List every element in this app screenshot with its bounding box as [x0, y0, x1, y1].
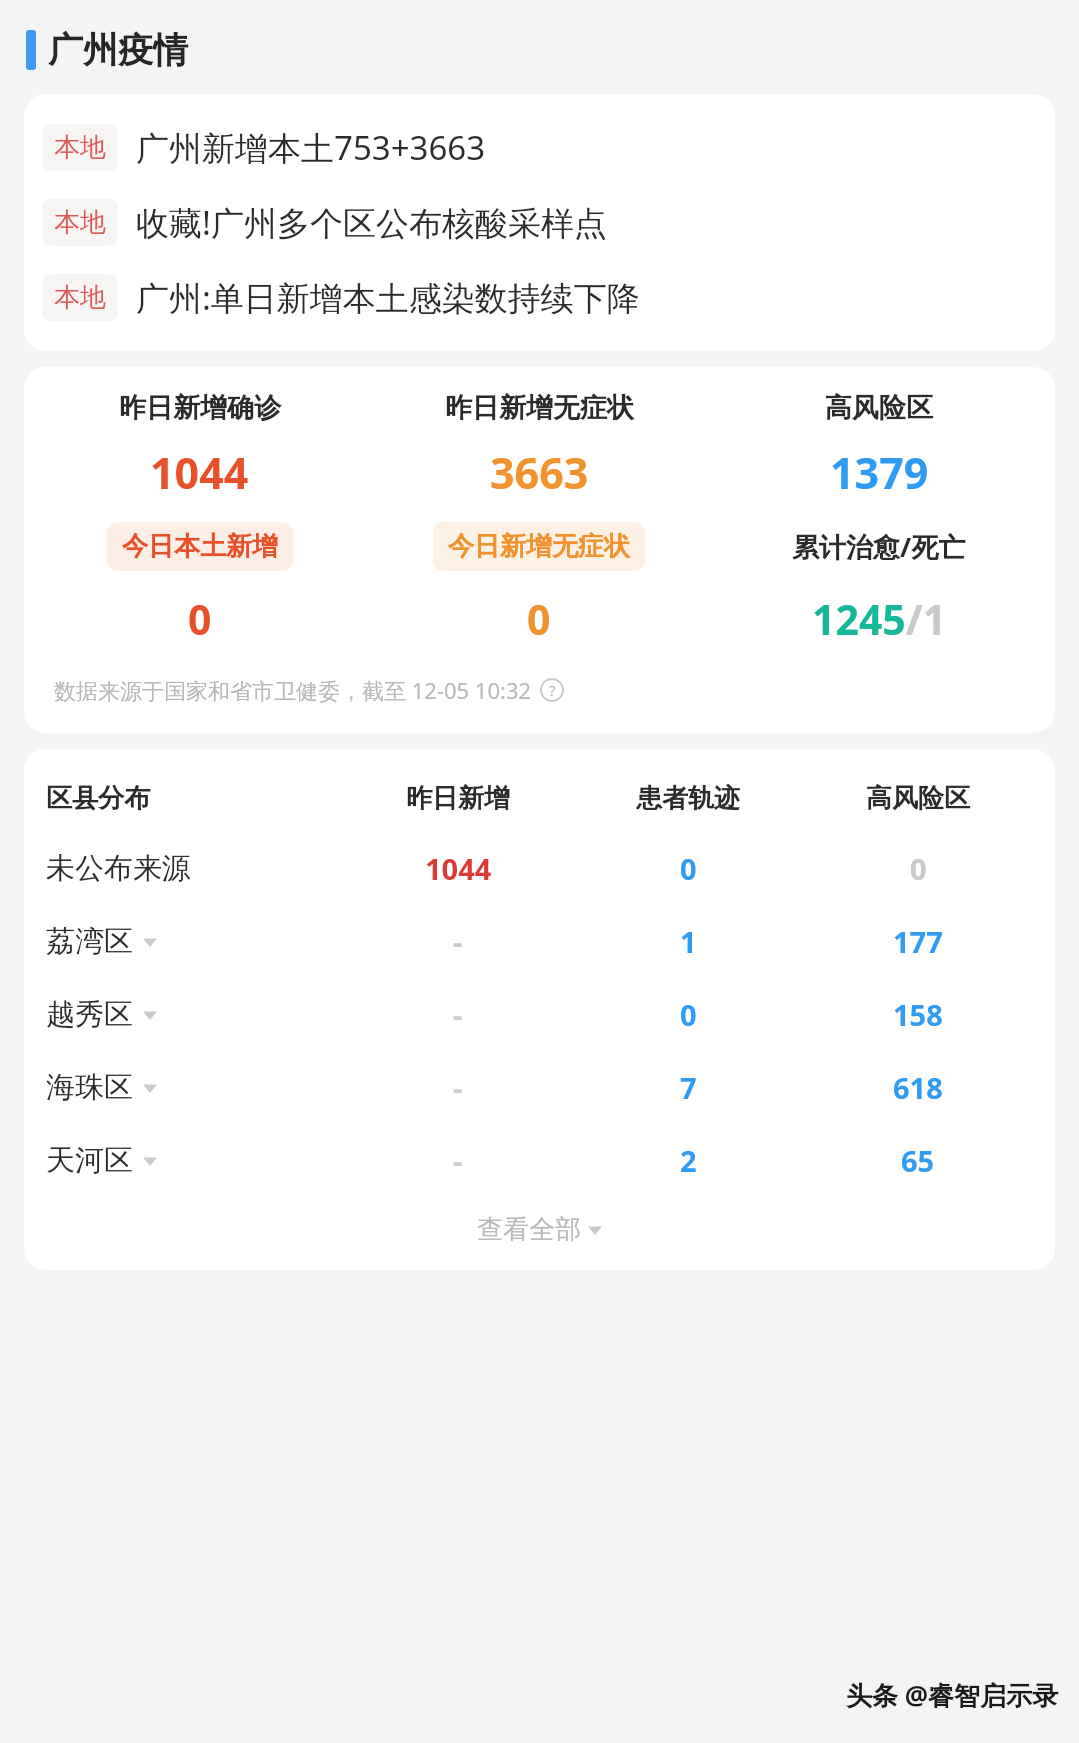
staticText: 1044 [150, 443, 249, 502]
staticText: 本地 [54, 206, 106, 239]
staticText: 数据来源于国家和省市卫健委，截至 12-05 10:32 [54, 675, 532, 705]
staticText: 昨日新增无症状 [445, 391, 634, 425]
button[interactable]: 天河区 [46, 1124, 1033, 1197]
button[interactable]: 今日本土新增 [107, 522, 293, 571]
staticText: 头条 @睿智启示录 [846, 1677, 1059, 1713]
staticText: 高风险区 [825, 391, 933, 425]
staticText: 昨日新增 [406, 782, 510, 815]
staticText: 广州疫情 [48, 28, 188, 72]
staticText: 本地 [54, 281, 106, 314]
staticText: 65 [901, 1141, 935, 1180]
button[interactable]: 本地 [42, 185, 1037, 260]
staticText: 1245/1 [812, 591, 947, 647]
staticText: 158 [893, 995, 943, 1034]
staticText: - [453, 1068, 463, 1107]
staticText: 收藏!广州多个区公布核酸采样点 [136, 200, 607, 245]
staticText: 区县分布 [46, 782, 150, 815]
button[interactable]: 数据说明 [540, 678, 564, 702]
staticText: 本地 [54, 131, 106, 164]
staticText: 天河区 [46, 1142, 133, 1179]
staticText: 未公布来源 [46, 850, 191, 887]
button[interactable]: 今日新增无症状 [433, 522, 645, 571]
staticText: 广州新增本土753+3663 [136, 125, 486, 170]
staticText: - [453, 1141, 463, 1180]
staticText: 荔湾区 [46, 923, 133, 960]
button[interactable]: 本地 [42, 110, 1037, 185]
staticText: 越秀区 [46, 996, 133, 1033]
staticText: 患者轨迹 [636, 782, 740, 815]
staticText: 177 [893, 922, 943, 961]
button[interactable]: 区县分布 [46, 765, 1033, 832]
staticText: 1 [680, 922, 697, 961]
staticText: 0 [527, 591, 551, 647]
button[interactable]: 荔湾区 [46, 905, 1033, 978]
staticText: ? [549, 680, 556, 700]
staticText: 累计治愈/死亡 [792, 528, 966, 565]
staticText: 昨日新增确诊 [119, 391, 281, 425]
staticText: 广州:单日新增本土感染数持续下降 [136, 275, 640, 320]
staticText: 0 [910, 849, 927, 888]
staticText: 7 [680, 1068, 697, 1107]
staticText: 0 [188, 591, 212, 647]
button[interactable]: 海珠区 [46, 1051, 1033, 1124]
staticText: 高风险区 [866, 782, 970, 815]
button[interactable]: 未公布来源 [46, 832, 1033, 905]
button[interactable]: 越秀区 [46, 978, 1033, 1051]
staticText: - [453, 922, 463, 961]
staticText: 3663 [490, 443, 589, 502]
staticText: 今日新增无症状 [448, 530, 630, 563]
staticText: 0 [680, 849, 697, 888]
staticText: 海珠区 [46, 1069, 133, 1106]
staticText: 2 [680, 1141, 697, 1180]
staticText: - [453, 995, 463, 1034]
staticText: 1044 [425, 849, 492, 888]
button[interactable]: 本地 [42, 260, 1037, 335]
staticText: 1379 [830, 443, 929, 502]
staticText: 查看全部 [477, 1213, 581, 1246]
staticText: 618 [893, 1068, 943, 1107]
button[interactable]: 查看全部 [46, 1205, 1033, 1254]
staticText: 0 [680, 995, 697, 1034]
staticText: 今日本土新增 [122, 530, 278, 563]
